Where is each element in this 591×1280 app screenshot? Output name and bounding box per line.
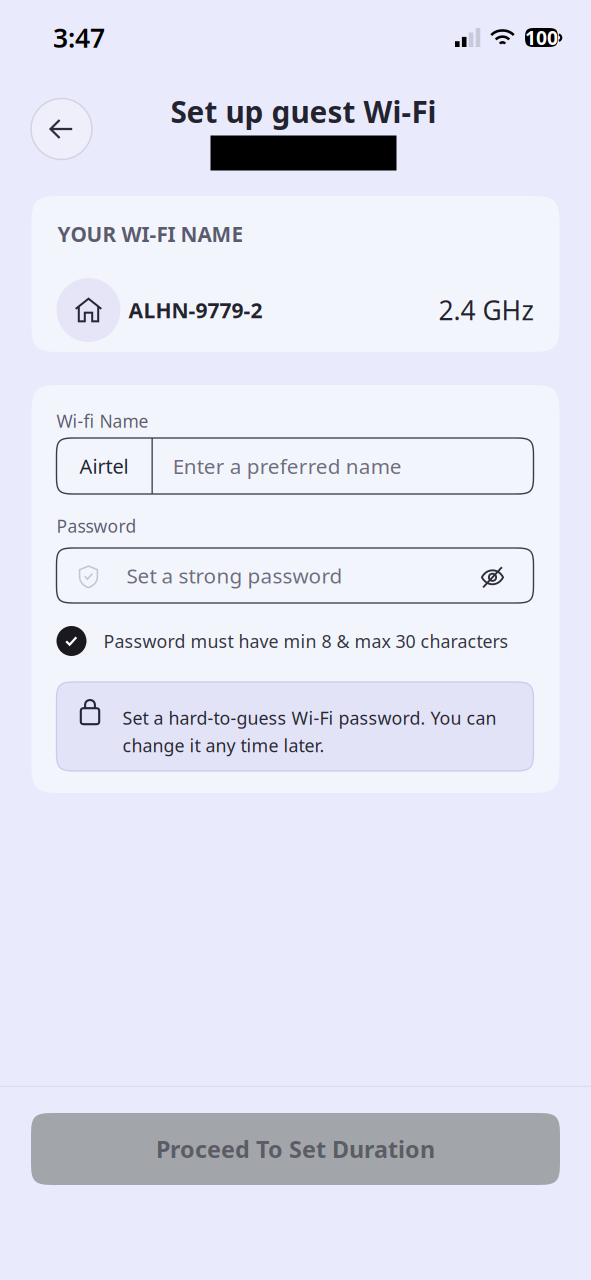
staticText: Proceed To Set Duration <box>156 1133 435 1164</box>
staticText: Password <box>56 514 136 538</box>
staticText: 2.4 GHz <box>438 292 533 328</box>
staticText: change it any time later. <box>122 734 324 757</box>
staticText: 3:47 <box>53 20 105 55</box>
staticText: Set a strong password <box>126 562 342 589</box>
button[interactable]: Back <box>31 98 92 159</box>
staticText: Set up guest Wi-Fi <box>170 92 436 131</box>
staticText: Set a hard-to-guess Wi-Fi password. You … <box>122 706 496 730</box>
button[interactable]: Proceed To Set Duration <box>31 1113 560 1185</box>
staticText: 100 <box>525 25 558 50</box>
button[interactable]: Show password <box>480 563 533 588</box>
staticText: ALHN-9779-2 <box>128 296 262 324</box>
staticText: Password must have min 8 & max 30 charac… <box>103 629 508 653</box>
staticText: Wi-fi Name <box>56 409 148 433</box>
staticText: YOUR WI-FI NAME <box>57 220 243 248</box>
staticText: Enter a preferred name <box>173 452 402 480</box>
staticText: Airtel <box>79 453 128 479</box>
